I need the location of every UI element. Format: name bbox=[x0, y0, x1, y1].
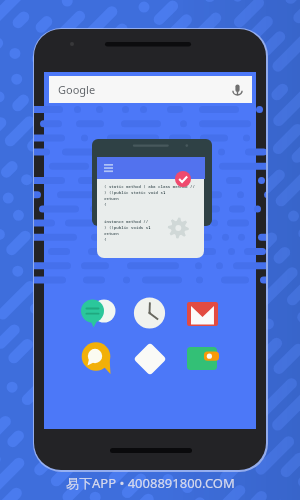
staticText: return bbox=[104, 231, 119, 237]
button[interactable]: Gmail bbox=[187, 302, 218, 326]
button[interactable]: Confirm bbox=[175, 171, 191, 187]
staticText: ) ()public voids s1 bbox=[104, 225, 151, 231]
staticText: ( static method ( aka class method // bbox=[104, 184, 195, 190]
staticText: 易下APP • 4008891800.COM bbox=[66, 474, 235, 492]
staticText: { bbox=[104, 237, 107, 243]
button[interactable]: Voice search bbox=[231, 83, 244, 96]
button[interactable]: Clock bbox=[133, 296, 167, 330]
staticText: { bbox=[104, 202, 107, 208]
button[interactable]: Files bbox=[132, 342, 169, 376]
staticText: Google bbox=[58, 82, 96, 97]
button[interactable]: Google bbox=[49, 76, 252, 103]
button[interactable]: Wallet bbox=[187, 347, 219, 370]
button[interactable]: Messages bbox=[81, 297, 116, 329]
staticText: ) ()public static void s1 bbox=[104, 190, 166, 196]
staticText: instance method // bbox=[104, 219, 149, 225]
staticText: return bbox=[104, 196, 119, 202]
button[interactable]: Chat bbox=[82, 343, 111, 374]
